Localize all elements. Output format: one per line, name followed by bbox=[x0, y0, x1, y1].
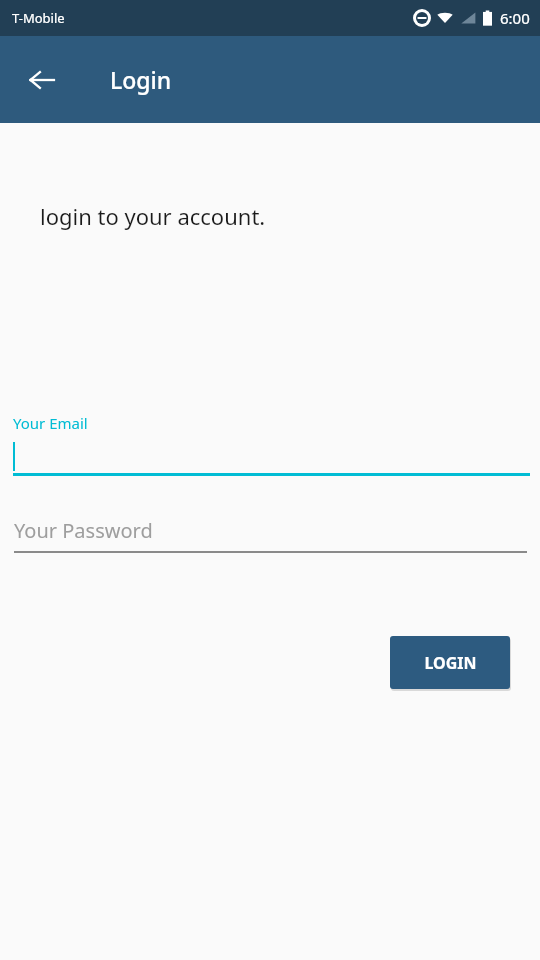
staticText: Your Email bbox=[13, 413, 88, 433]
button[interactable]: LOGIN bbox=[390, 636, 510, 689]
staticText: 6:00 bbox=[500, 8, 530, 28]
staticText: Login bbox=[110, 64, 172, 95]
button[interactable]: Your Password bbox=[0, 511, 540, 571]
staticText: LOGIN bbox=[424, 652, 477, 674]
staticText: Your Password bbox=[14, 517, 153, 544]
button[interactable]: Your Email bbox=[0, 413, 540, 491]
staticText: T-Mobile bbox=[12, 9, 65, 27]
staticText: login to your account. bbox=[40, 201, 266, 231]
button[interactable]: Back bbox=[18, 56, 66, 104]
